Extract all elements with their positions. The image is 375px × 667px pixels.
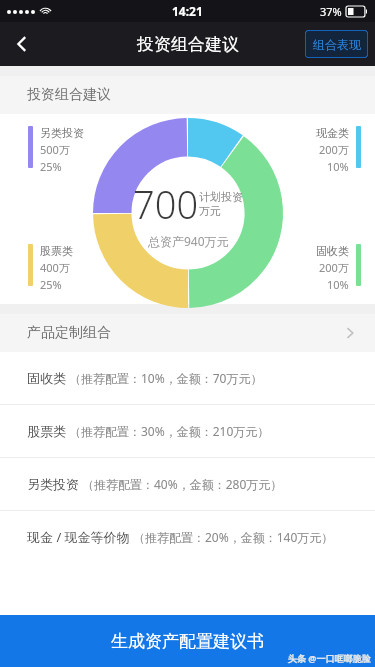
- staticText: 万元: [199, 204, 221, 218]
- staticText: 25%: [40, 277, 62, 292]
- staticText: 计划投资: [199, 190, 243, 204]
- button[interactable]: 另类投资: [0, 458, 375, 510]
- staticText: 产品定制组合: [27, 324, 111, 342]
- staticText: 14:21: [172, 3, 203, 19]
- staticText: 股票类: [27, 423, 66, 439]
- staticText: （推荐配置：10%，金额：70万元）: [69, 370, 263, 386]
- staticText: 固收类: [27, 370, 66, 386]
- staticText: 25%: [40, 159, 62, 174]
- staticText: 200万: [319, 142, 349, 157]
- button[interactable]: 组合表现: [305, 30, 368, 58]
- staticText: 10%: [327, 159, 349, 174]
- staticText: 现金 / 现金等价物: [27, 528, 130, 546]
- staticText: 头条 @一口哐啷脆脸: [288, 652, 371, 664]
- staticText: 现金类: [316, 126, 349, 140]
- button[interactable]: Back: [0, 22, 44, 66]
- staticText: 200万: [319, 260, 349, 275]
- staticText: （推荐配置：30%，金额：210万元）: [69, 423, 270, 439]
- staticText: 500万: [40, 142, 70, 157]
- staticText: 另类投资: [27, 476, 79, 492]
- staticText: 另类投资: [40, 126, 84, 140]
- button[interactable]: 股票类: [0, 405, 375, 457]
- staticText: 10%: [327, 277, 349, 292]
- staticText: 投资组合建议: [27, 86, 111, 104]
- button[interactable]: 现金 / 现金等价物: [0, 511, 375, 563]
- staticText: 700: [133, 178, 199, 230]
- staticText: 股票类: [40, 244, 73, 258]
- staticText: 组合表现: [313, 37, 361, 52]
- button[interactable]: 固收类: [0, 352, 375, 404]
- button[interactable]: 生成资产配置建议书: [0, 615, 375, 667]
- staticText: 投资组合建议: [137, 34, 239, 55]
- staticText: 固收类: [316, 244, 349, 258]
- staticText: 总资产940万元: [148, 233, 229, 249]
- staticText: （推荐配置：20%，金额：140万元）: [133, 529, 334, 545]
- staticText: （推荐配置：40%，金额：280万元）: [82, 476, 283, 492]
- staticText: 37%: [320, 4, 342, 19]
- staticText: 生成资产配置建议书: [111, 631, 264, 652]
- button[interactable]: 产品定制组合: [0, 314, 375, 352]
- staticText: 400万: [40, 260, 70, 275]
